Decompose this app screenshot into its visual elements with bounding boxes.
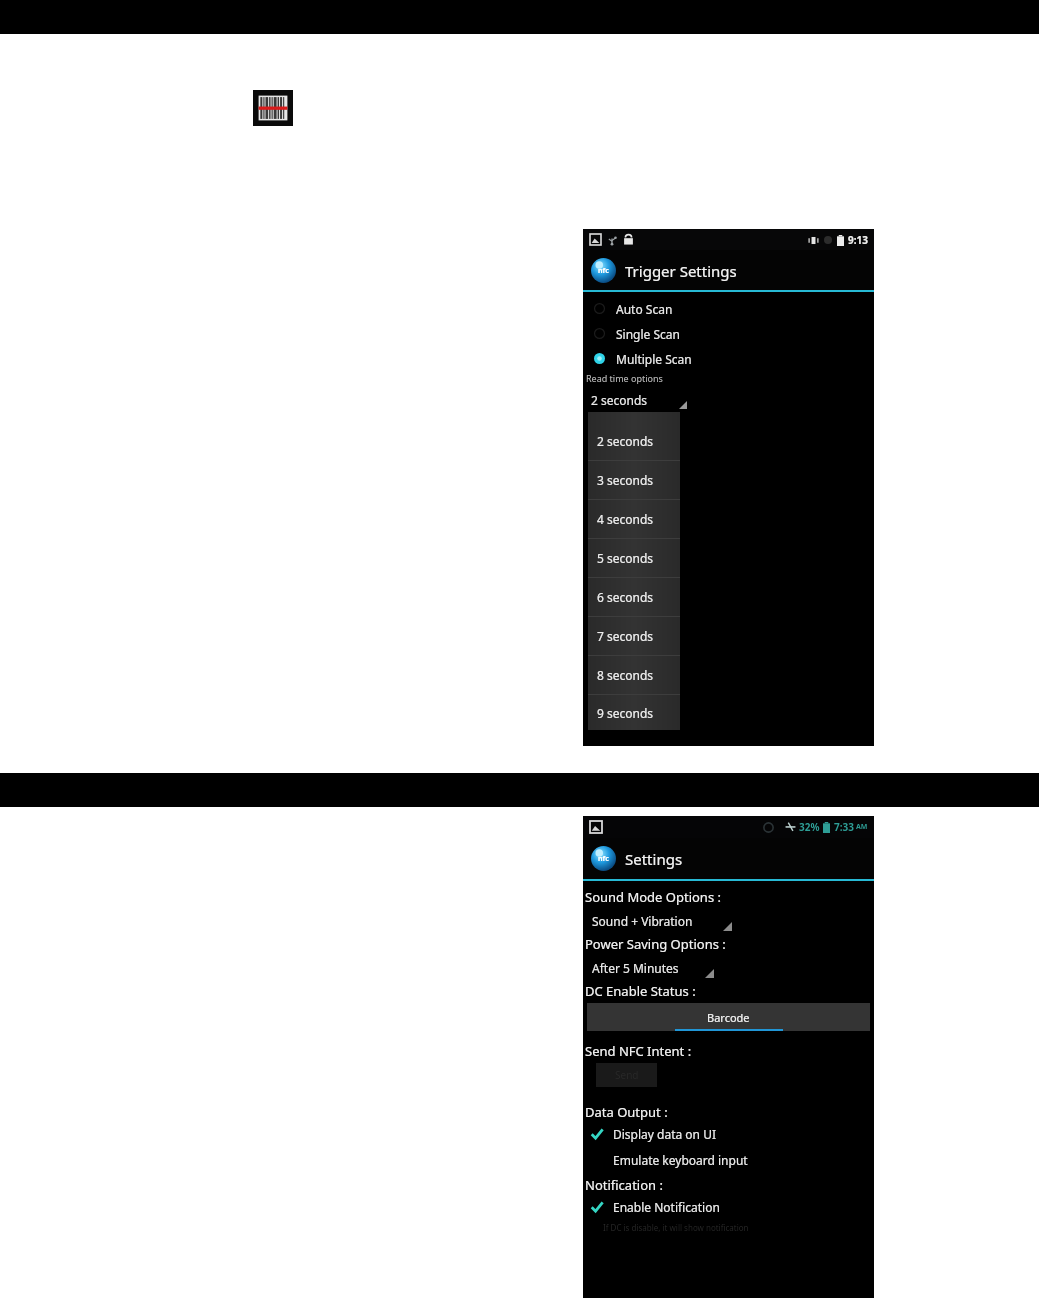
button[interactable]: After 5 Minutes — [592, 956, 714, 979]
button[interactable]: Multiple Scan — [583, 346, 874, 371]
staticText: Sound Mode Options : — [585, 888, 721, 906]
staticText: Settings — [625, 849, 683, 869]
staticText: 8 seconds — [597, 667, 654, 683]
button[interactable]: 6 seconds — [588, 578, 680, 616]
button[interactable]: Enable Notification — [583, 1194, 874, 1220]
button[interactable]: 2 seconds — [588, 422, 680, 460]
staticText: 32% — [799, 820, 820, 834]
staticText: Power Saving Options : — [585, 935, 726, 953]
staticText: Barcode — [707, 1010, 750, 1025]
staticText: DC Enable Status : — [585, 982, 696, 1000]
staticText: 6 seconds — [597, 589, 654, 605]
staticText: Display data on UI — [613, 1126, 716, 1142]
staticText: Notification : — [585, 1176, 663, 1194]
button[interactable]: 2 seconds — [591, 389, 687, 410]
button[interactable]: 4 seconds — [588, 500, 680, 538]
button[interactable]: 7 seconds — [588, 617, 680, 655]
staticText: If DC is disable, it will show notificat… — [603, 1222, 749, 1233]
button[interactable]: Auto Scan — [583, 296, 874, 321]
staticText: 5 seconds — [597, 550, 654, 566]
staticText: 7:33 — [834, 820, 854, 834]
staticText: 9:13 — [848, 233, 868, 247]
staticText: Data Output : — [585, 1103, 668, 1121]
button[interactable]: Display data on UI — [583, 1121, 874, 1147]
staticText: Send NFC Intent : — [585, 1042, 692, 1060]
button[interactable]: Emulate keyboard input — [583, 1147, 874, 1173]
button[interactable]: 8 seconds — [588, 656, 680, 694]
staticText: Multiple Scan — [616, 351, 692, 367]
staticText: nfc — [598, 266, 609, 276]
staticText: 2 seconds — [591, 392, 648, 408]
button[interactable]: 9 seconds — [588, 695, 680, 730]
button[interactable]: Barcode scanner — [253, 90, 293, 126]
staticText: 9 seconds — [597, 705, 654, 721]
button[interactable]: Sound + Vibration — [592, 909, 732, 932]
button[interactable]: nfc — [583, 250, 874, 290]
staticText: AM — [856, 822, 868, 832]
staticText: After 5 Minutes — [592, 960, 679, 976]
staticText: Sound + Vibration — [592, 913, 693, 929]
button[interactable]: Barcode — [587, 1003, 870, 1031]
staticText: Emulate keyboard input — [613, 1152, 748, 1168]
staticText: nfc — [598, 854, 609, 864]
staticText: Trigger Settings — [625, 261, 737, 281]
staticText: 3 seconds — [597, 472, 654, 488]
staticText: Enable Notification — [613, 1199, 720, 1215]
staticText: Read time options — [586, 372, 663, 384]
button[interactable]: 5 seconds — [588, 539, 680, 577]
button[interactable]: Single Scan — [583, 321, 874, 346]
staticText: 2 seconds — [597, 433, 654, 449]
staticText: Auto Scan — [616, 301, 673, 317]
staticText: 7 seconds — [597, 628, 654, 644]
button[interactable]: nfc — [583, 838, 874, 879]
staticText: Send — [615, 1068, 639, 1082]
staticText: 4 seconds — [597, 511, 654, 527]
staticText: Single Scan — [616, 326, 680, 342]
button[interactable]: 3 seconds — [588, 461, 680, 499]
